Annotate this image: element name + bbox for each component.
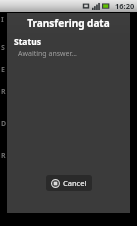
staticText: 16:20 xyxy=(115,1,135,11)
staticText: E xyxy=(1,65,5,75)
staticText: D xyxy=(1,119,7,129)
button[interactable]: Cancel xyxy=(46,175,92,191)
staticText: R xyxy=(1,87,6,97)
staticText: Status xyxy=(14,36,41,48)
staticText: I xyxy=(1,15,4,25)
staticText: Transfering data xyxy=(27,16,110,30)
staticText: R xyxy=(1,151,6,161)
staticText: Cancel xyxy=(63,178,87,188)
staticText: Awaiting answer... xyxy=(18,49,77,59)
staticText: S xyxy=(1,43,5,53)
